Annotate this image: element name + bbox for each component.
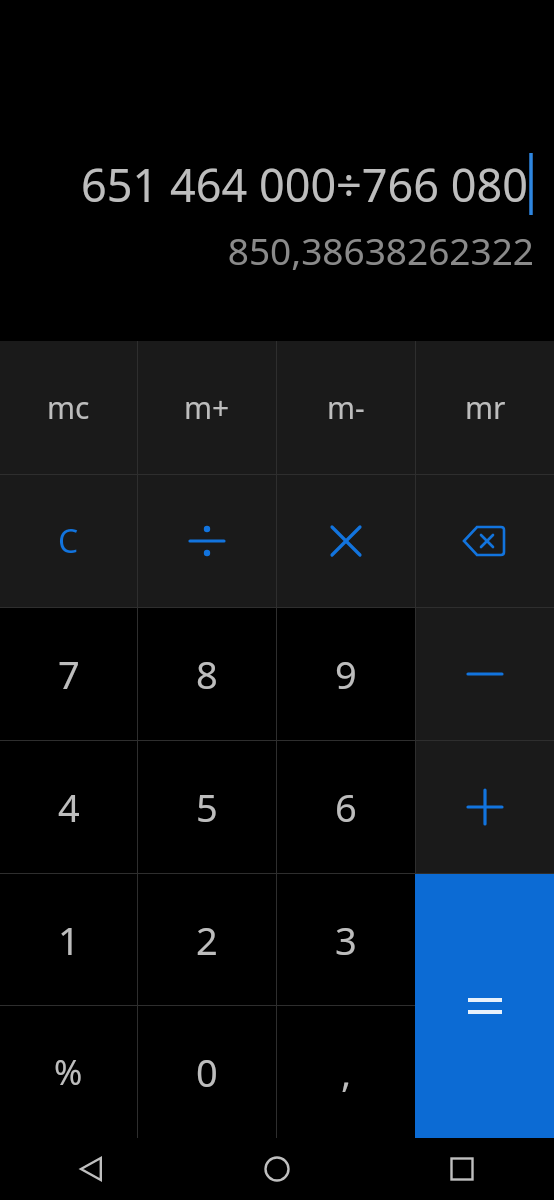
staticText: C: [58, 519, 79, 563]
button[interactable]: 4: [0, 741, 137, 873]
staticText: 7: [58, 648, 80, 700]
button[interactable]: Multiply: [277, 475, 415, 607]
staticText: %: [54, 1049, 83, 1095]
staticText: 0: [196, 1046, 218, 1098]
button[interactable]: Minus: [416, 608, 554, 740]
button[interactable]: C: [0, 475, 137, 607]
button[interactable]: m-: [277, 341, 415, 474]
staticText: 2: [196, 914, 218, 966]
button[interactable]: 8: [138, 608, 276, 740]
button[interactable]: 1: [0, 874, 137, 1005]
button[interactable]: Recent apps: [369, 1138, 554, 1200]
button[interactable]: mr: [416, 341, 554, 474]
staticText: mc: [47, 387, 90, 428]
button[interactable]: mc: [0, 341, 137, 474]
button[interactable]: Backspace: [416, 475, 554, 607]
button[interactable]: 3: [277, 874, 415, 1005]
button[interactable]: 9: [277, 608, 415, 740]
button[interactable]: 2: [138, 874, 276, 1005]
staticText: 8: [196, 648, 218, 700]
staticText: 850,38638262322: [227, 225, 534, 275]
staticText: m+: [184, 387, 230, 428]
button[interactable]: 6: [277, 741, 415, 873]
staticText: 3: [335, 914, 357, 966]
button[interactable]: Equals: [415, 874, 554, 1138]
staticText: 651 464 000÷766 080: [81, 154, 528, 215]
button[interactable]: 7: [0, 608, 137, 740]
staticText: 1: [58, 914, 80, 966]
staticText: mr: [465, 387, 506, 428]
staticText: 9: [335, 648, 357, 700]
button[interactable]: %: [0, 1006, 137, 1138]
button[interactable]: Back: [0, 1138, 184, 1200]
staticText: ,: [341, 1046, 352, 1098]
button[interactable]: Divide: [138, 475, 276, 607]
staticText: m-: [327, 387, 365, 428]
button[interactable]: ,: [277, 1006, 415, 1138]
button[interactable]: m+: [138, 341, 276, 474]
button[interactable]: Plus: [416, 741, 554, 873]
button[interactable]: 5: [138, 741, 276, 873]
staticText: 6: [335, 781, 357, 833]
staticText: 4: [58, 781, 80, 833]
staticText: 5: [196, 781, 218, 833]
button[interactable]: 0: [138, 1006, 276, 1138]
button[interactable]: Home: [184, 1138, 369, 1200]
